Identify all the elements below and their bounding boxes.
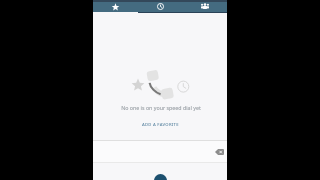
button[interactable]: Backspace <box>212 145 226 159</box>
staticText: No one is on your speed dial yet <box>121 104 201 111</box>
button[interactable]: Call <box>154 174 167 180</box>
button[interactable]: Contacts <box>182 1 227 12</box>
staticText: ADD A FAVORITE <box>142 122 179 128</box>
button[interactable]: ADD A FAVORITE <box>136 120 185 130</box>
button[interactable]: Recents <box>137 1 182 12</box>
button[interactable]: Speed dial <box>93 1 137 12</box>
